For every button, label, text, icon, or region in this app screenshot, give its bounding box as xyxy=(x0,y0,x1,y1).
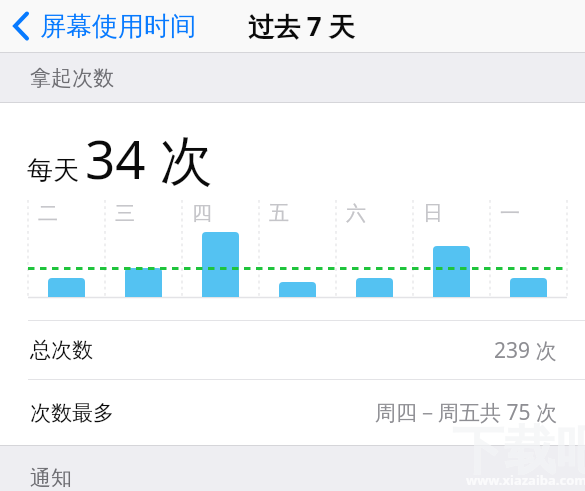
staticText: 五 xyxy=(269,201,289,226)
staticText: 六 xyxy=(346,201,366,226)
staticText: 日 xyxy=(423,201,443,226)
staticText: 一 xyxy=(500,201,520,226)
staticText: 屏幕使用时间 xyxy=(40,10,196,43)
staticText: 34 次 xyxy=(85,122,213,194)
staticText: 拿起次数 xyxy=(30,65,114,91)
button[interactable]: 屏幕使用时间 xyxy=(8,0,188,52)
staticText: 通知 xyxy=(30,465,72,491)
staticText: 每天 xyxy=(27,154,79,187)
staticText: 二 xyxy=(38,201,58,226)
staticText: 周四－周五共 75 次 xyxy=(375,398,557,427)
staticText: 次数最多 xyxy=(30,400,114,426)
staticText: 下载吧 xyxy=(452,418,585,484)
staticText: 三 xyxy=(115,201,135,226)
staticText: 下载吧 xyxy=(452,418,585,484)
staticText: 四 xyxy=(192,201,212,226)
staticText: 总次数 xyxy=(30,337,93,363)
staticText: 239 次 xyxy=(494,336,557,365)
button[interactable]: 次数最多 xyxy=(0,380,585,445)
staticText: www.xiazaiba.com xyxy=(466,471,585,489)
staticText: 过去 7 天 xyxy=(248,8,355,44)
button[interactable]: 总次数 xyxy=(0,321,585,379)
